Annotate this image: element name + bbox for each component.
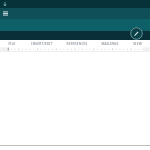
staticText: INSERT/EDIT	[31, 42, 53, 46]
staticText: VIEW	[133, 42, 142, 46]
button[interactable]: FILE	[0, 40, 23, 47]
button[interactable]: REFERENCES	[60, 40, 94, 47]
button[interactable]: Navigation menu	[1, 9, 10, 18]
button[interactable]: MAILINGS	[94, 40, 125, 47]
button[interactable]: INSERT/EDIT	[23, 40, 60, 47]
staticText: FILE	[8, 42, 16, 46]
staticText: REFERENCES	[66, 42, 88, 46]
staticText: MAILINGS	[101, 42, 119, 46]
button[interactable]: VIEW	[125, 40, 150, 47]
button[interactable]: Edit document	[130, 27, 143, 40]
